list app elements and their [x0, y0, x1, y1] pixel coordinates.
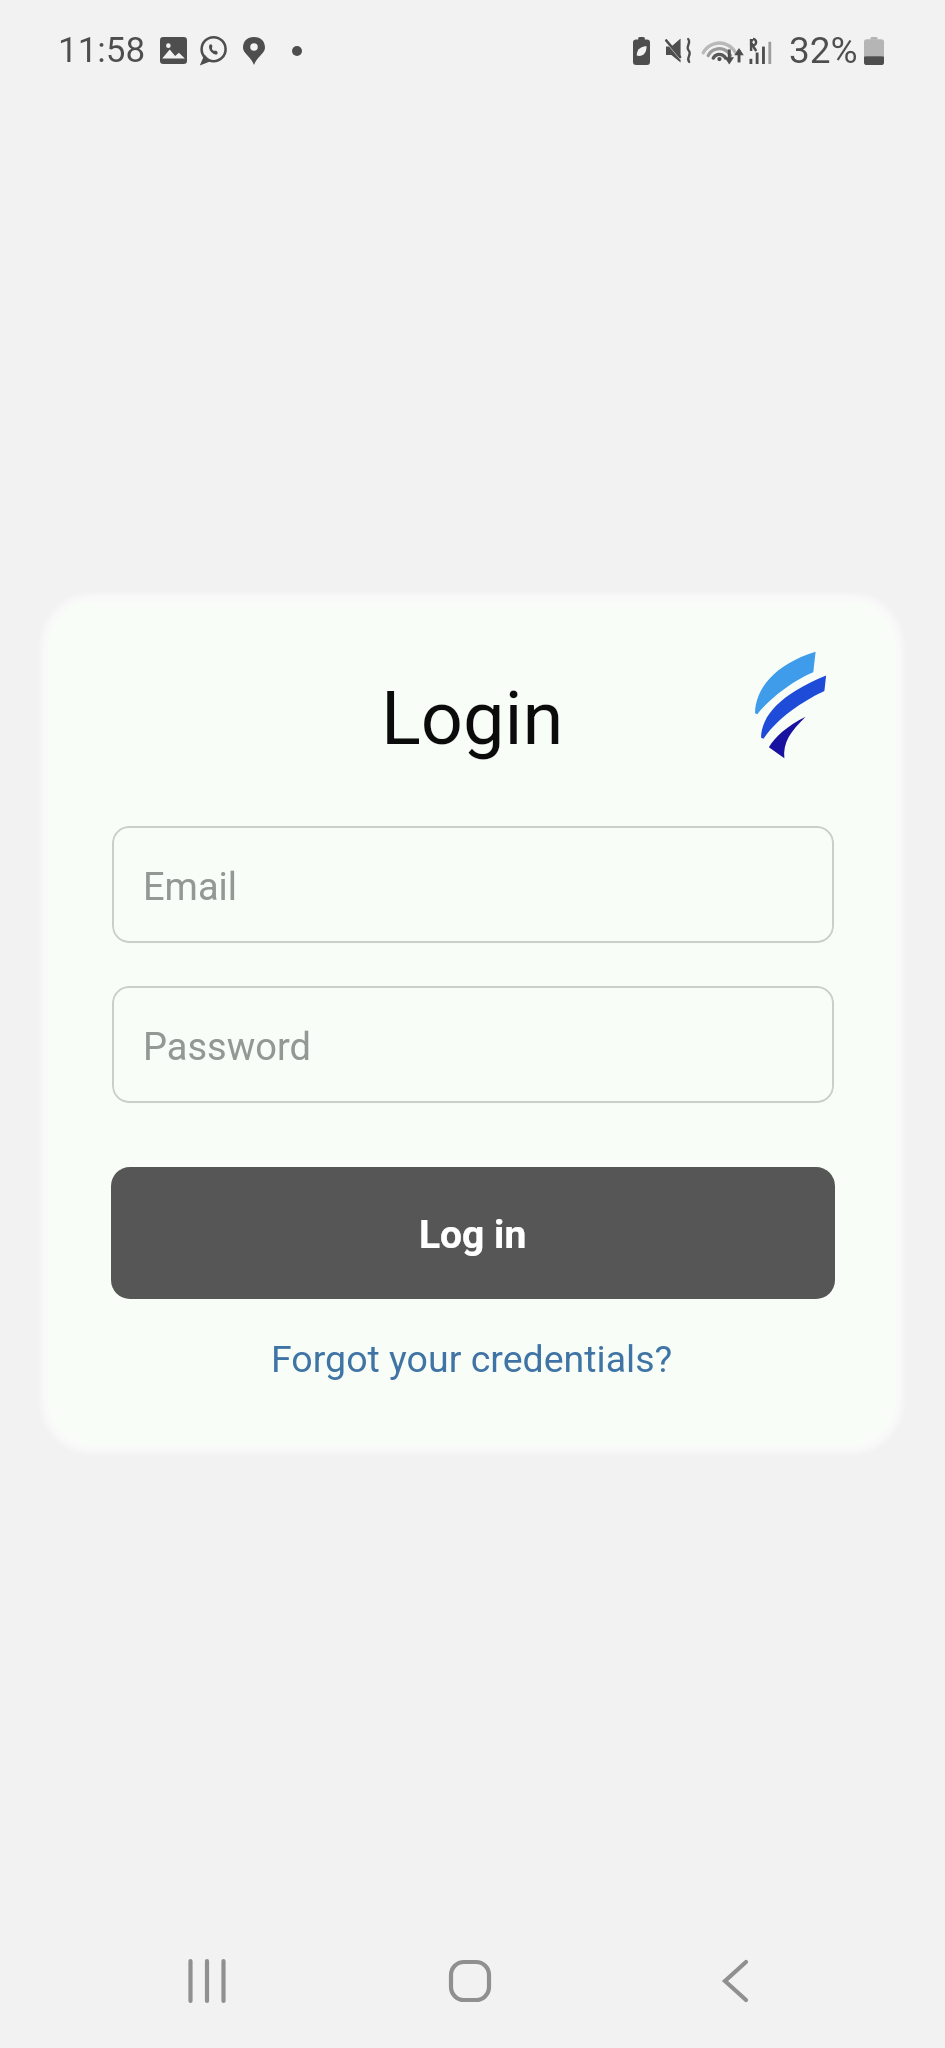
staticText: Login [381, 675, 564, 762]
staticText: 32% [789, 29, 858, 72]
staticText: 11:58 [58, 30, 146, 71]
button[interactable]: Email [112, 826, 834, 943]
button[interactable]: Recent apps [152, 1926, 262, 2036]
staticText: Forgot your credentials? [271, 1337, 673, 1381]
staticText: Email [143, 865, 238, 910]
button[interactable]: Forgot your credentials? [253, 1325, 691, 1393]
button[interactable]: Log in [111, 1167, 835, 1299]
staticText: Password [143, 1025, 311, 1070]
button[interactable]: Home [415, 1926, 525, 2036]
button[interactable]: Password [112, 986, 834, 1103]
button[interactable]: Back [680, 1926, 790, 2036]
staticText: Log in [419, 1212, 527, 1258]
